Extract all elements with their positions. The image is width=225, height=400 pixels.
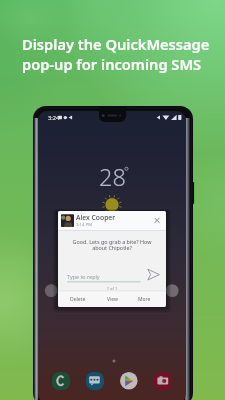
button[interactable]: Delete <box>64 292 92 307</box>
button[interactable]: Camera <box>154 372 172 390</box>
staticText: 1 of 1 <box>58 286 166 291</box>
staticText: More <box>138 296 151 303</box>
staticText: Good. Lets go grab a bite? How about Chi… <box>69 238 155 252</box>
staticText: 28 <box>99 161 126 193</box>
staticText: Display the QuickMessage pop-up for inco… <box>22 34 210 74</box>
staticText: Type to reply <box>67 273 100 280</box>
button[interactable]: More <box>130 292 158 307</box>
staticText: 3:14 PM <box>76 221 93 227</box>
staticText: Delete <box>70 296 86 303</box>
button[interactable]: View <box>98 292 126 307</box>
button[interactable]: Messages <box>86 372 104 390</box>
button[interactable]: Phone <box>52 372 70 390</box>
staticText: 3:24 <box>48 114 60 122</box>
button[interactable]: Play Store <box>120 372 138 390</box>
staticText: Alex Cooper <box>76 213 116 222</box>
staticText: View <box>107 296 118 303</box>
